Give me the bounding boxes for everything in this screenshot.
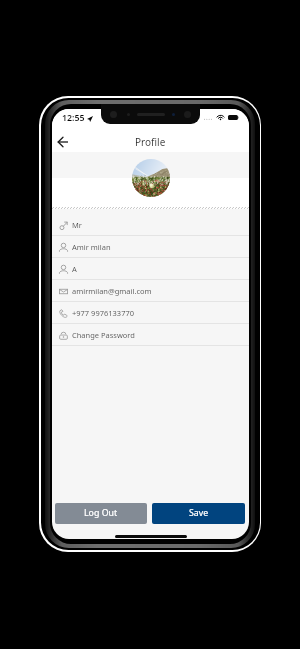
button[interactable]: +977 9976133770: [52, 302, 249, 324]
button[interactable]: Mr: [52, 214, 249, 236]
staticText: Log Out: [84, 507, 118, 519]
staticText: +977 9976133770: [72, 308, 135, 318]
button[interactable]: Amir milan: [52, 236, 249, 258]
button[interactable]: Profile photo: [132, 159, 170, 197]
button[interactable]: A: [52, 258, 249, 280]
staticText: A: [72, 264, 77, 274]
staticText: 12:55: [62, 112, 85, 124]
staticText: Mr: [72, 220, 82, 230]
staticText: Save: [189, 507, 209, 519]
button[interactable]: Save: [152, 503, 245, 524]
staticText: Amir milan: [72, 242, 111, 252]
staticText: Profile: [135, 135, 166, 149]
button[interactable]: Back: [52, 130, 74, 153]
button[interactable]: amirmilan@gmail.com: [52, 280, 249, 302]
staticText: amirmilan@gmail.com: [72, 286, 152, 296]
staticText: Change Password: [72, 330, 135, 340]
button[interactable]: Change Password: [52, 324, 249, 346]
button[interactable]: Log Out: [55, 503, 147, 524]
